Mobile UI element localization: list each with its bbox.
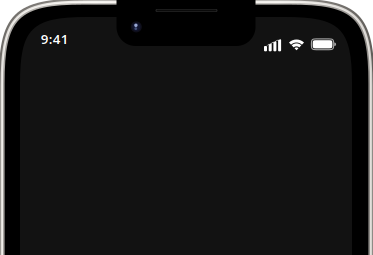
staticText: 9:41 bbox=[41, 30, 69, 48]
